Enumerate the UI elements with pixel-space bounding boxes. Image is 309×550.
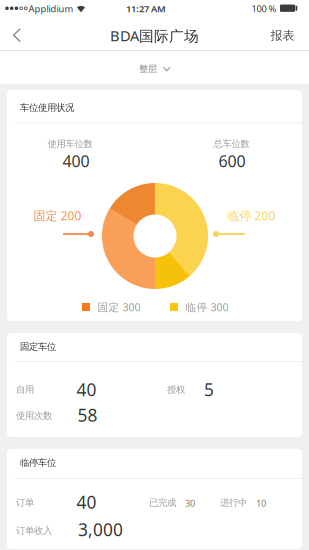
staticText: 报表 xyxy=(270,28,294,43)
staticText: 进行中 xyxy=(220,497,247,508)
staticText: 订单收入 xyxy=(16,525,52,536)
staticText: 自用 xyxy=(16,384,34,395)
staticText: 使用车位数 xyxy=(47,138,92,150)
staticText: 400 xyxy=(62,150,89,172)
staticText: 600 xyxy=(218,150,245,172)
staticText: 使用次数 xyxy=(16,410,52,421)
staticText: 5 xyxy=(204,378,214,401)
staticText: 100 % xyxy=(251,2,276,15)
staticText: 40 xyxy=(76,490,96,513)
staticText: 临停 200 xyxy=(227,207,275,223)
staticText: 固定 200 xyxy=(33,207,81,223)
button[interactable]: 报表 xyxy=(262,20,302,51)
staticText: 40 xyxy=(76,378,96,401)
staticText: BDA国际广场 xyxy=(110,26,199,45)
staticText: 临停车位 xyxy=(20,457,56,468)
staticText: 58 xyxy=(77,403,97,426)
staticText: 总车位数 xyxy=(213,138,249,150)
staticText: 已完成 xyxy=(149,497,176,508)
staticText: 授权 xyxy=(167,384,185,395)
staticText: 整层 xyxy=(139,63,157,75)
staticText: 11:27 AM xyxy=(126,2,166,15)
staticText: 30 xyxy=(185,497,195,509)
staticText: 订单 xyxy=(16,497,34,508)
staticText: 固定车位 xyxy=(20,341,56,352)
staticText: 固定 300 xyxy=(97,300,140,314)
staticText: 10 xyxy=(256,497,266,509)
button[interactable]: Back xyxy=(0,20,34,50)
button[interactable]: 整层 xyxy=(131,55,179,83)
staticText: Applidium xyxy=(28,2,73,15)
staticText: 3,000 xyxy=(78,518,123,541)
staticText: 临停 300 xyxy=(185,300,228,314)
staticText: 车位使用状况 xyxy=(20,102,74,113)
